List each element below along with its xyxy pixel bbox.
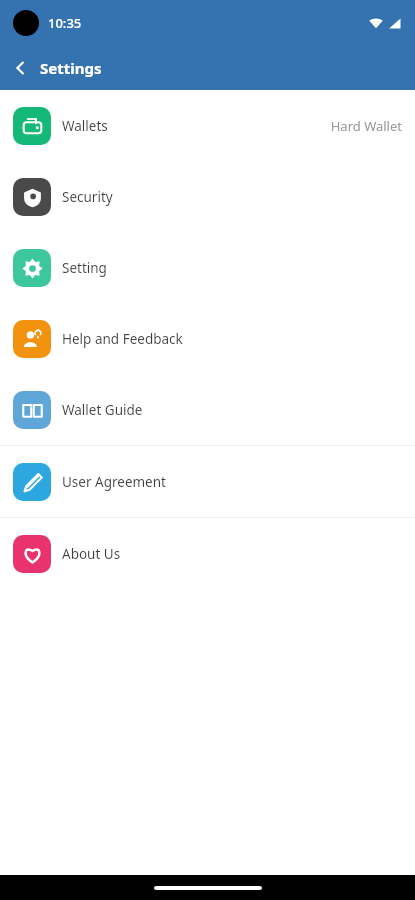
staticText: 10:35 [48, 14, 82, 32]
button[interactable]: User Agreement [0, 446, 415, 517]
button[interactable]: About Us [0, 518, 415, 589]
staticText: Help and Feedback [62, 330, 183, 348]
button[interactable]: Wallet Guide [0, 374, 415, 445]
staticText: User Agreement [62, 473, 166, 491]
staticText: Wallets [62, 117, 108, 135]
staticText: About Us [62, 545, 121, 563]
button[interactable]: Security [0, 161, 415, 232]
staticText: Security [62, 188, 113, 206]
button[interactable]: Wallets [0, 90, 415, 161]
staticText: Hard Wallet [330, 117, 402, 135]
staticText: Setting [62, 259, 107, 277]
staticText: Settings [40, 58, 102, 78]
button[interactable]: Back [0, 48, 40, 88]
button[interactable]: Help and Feedback [0, 303, 415, 374]
button[interactable]: Setting [0, 232, 415, 303]
staticText: Wallet Guide [62, 401, 143, 419]
